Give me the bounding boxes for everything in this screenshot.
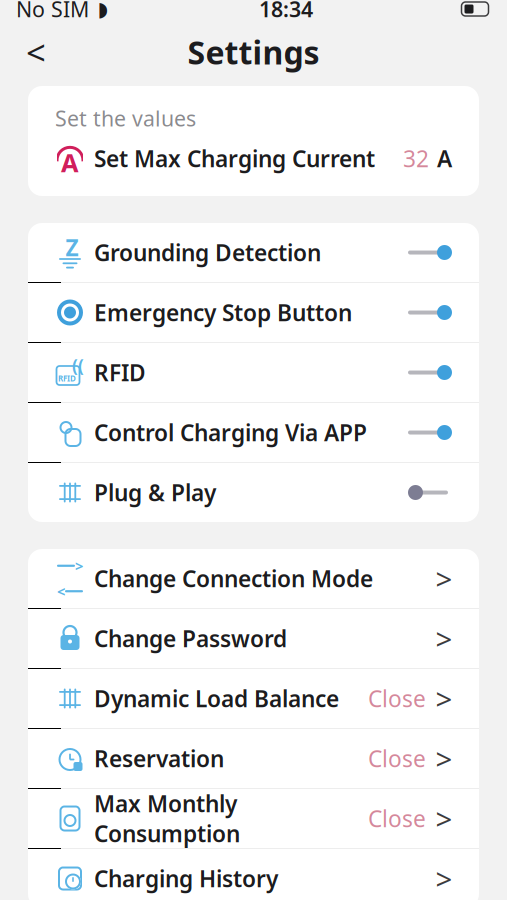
staticText: ((	[72, 354, 84, 377]
button[interactable]: Charging History	[28, 849, 479, 900]
button[interactable]: Z	[28, 223, 479, 282]
staticText: Max Monthly Consumption	[94, 788, 240, 849]
staticText: Close	[368, 743, 426, 773]
staticText: Settings	[187, 31, 319, 73]
button[interactable]: Control Charging Via APP	[28, 403, 479, 462]
staticText: ◗	[97, 0, 108, 20]
staticText: A	[61, 145, 79, 179]
button[interactable]: Max Monthly Consumption	[28, 789, 479, 848]
staticText: >	[435, 679, 452, 718]
button[interactable]: >	[28, 549, 479, 608]
staticText: Close	[368, 683, 426, 713]
staticText: >	[435, 799, 452, 838]
staticText: 18:34	[259, 0, 313, 23]
staticText: <	[57, 581, 65, 601]
button[interactable]: Plug & Play	[28, 463, 479, 522]
staticText: Control Charging Via APP	[94, 417, 367, 447]
staticText: Change Connection Mode	[94, 563, 373, 593]
button[interactable]: Back	[14, 30, 58, 74]
staticText: >	[435, 559, 452, 598]
staticText: <	[26, 29, 46, 75]
button[interactable]: ((	[28, 343, 479, 402]
staticText: Set Max Charging Current	[94, 143, 375, 173]
button[interactable]: A	[28, 132, 479, 184]
button[interactable]: Dynamic Load Balance	[28, 669, 479, 728]
staticText: Emergency Stop Button	[94, 297, 352, 327]
staticText: >	[75, 556, 83, 575]
staticText: 32	[403, 143, 429, 173]
button[interactable]: Reservation	[28, 729, 479, 788]
staticText: Grounding Detection	[94, 237, 321, 267]
staticText: Charging History	[94, 863, 278, 893]
staticText: >	[435, 859, 452, 898]
staticText: RFID	[94, 357, 146, 387]
staticText: Set the values	[55, 104, 196, 132]
staticText: Z	[65, 232, 78, 262]
staticText: Reservation	[94, 743, 224, 773]
button[interactable]: Change Password	[28, 609, 479, 668]
staticText: >	[435, 739, 452, 778]
staticText: Change Password	[94, 623, 287, 653]
staticText: >	[435, 619, 452, 658]
staticText: A	[437, 143, 452, 173]
button[interactable]: Emergency Stop Button	[28, 283, 479, 342]
staticText: RFID	[58, 373, 76, 384]
staticText: Plug & Play	[94, 477, 216, 507]
staticText: No SIM	[16, 0, 89, 23]
staticText: Dynamic Load Balance	[94, 683, 339, 713]
staticText: Close	[368, 803, 426, 833]
